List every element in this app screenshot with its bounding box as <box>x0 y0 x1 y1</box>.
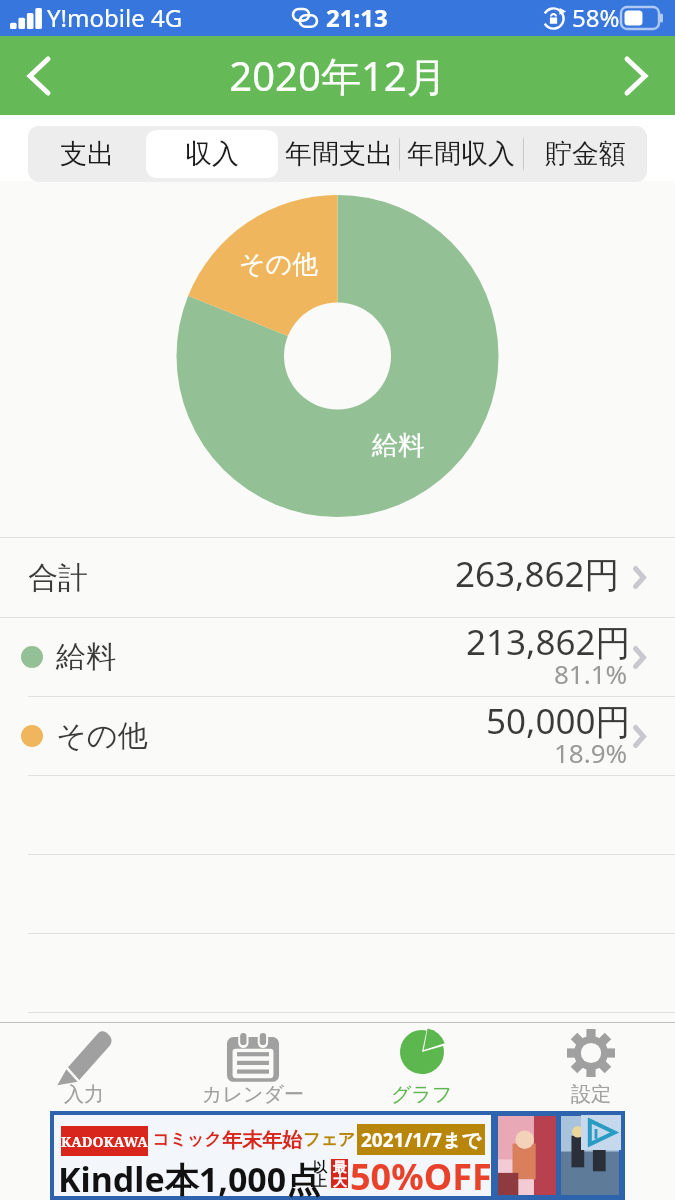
staticText: 最 大 <box>333 1159 347 1188</box>
staticText: 給料 <box>56 638 116 676</box>
staticText: カレンダー <box>202 1082 304 1107</box>
staticText: 収入 <box>185 137 239 171</box>
button[interactable]: 年間収入 <box>399 130 523 178</box>
staticText: 50%OFF <box>350 1152 492 1200</box>
staticText: 入力 <box>64 1082 104 1107</box>
button[interactable]: 収入 <box>146 130 278 178</box>
staticText: コミック <box>152 1129 222 1150</box>
staticText: Kindle本1,000点 <box>58 1156 321 1200</box>
staticText: その他 <box>239 248 319 281</box>
staticText: その他 <box>56 717 148 755</box>
staticText: 支出 <box>60 137 114 171</box>
staticText: 給料 <box>372 429 424 462</box>
staticText: 18.9% <box>554 735 628 770</box>
staticText: 81.1% <box>554 656 628 691</box>
staticText: 以 上 <box>313 1159 327 1191</box>
staticText: 263,862円 <box>455 550 620 598</box>
staticText: 21:13 <box>326 1 388 34</box>
staticText: 2021/1/7まで <box>361 1127 481 1153</box>
staticText: 合計 <box>28 559 88 597</box>
staticText: 50,000円 <box>486 697 631 745</box>
staticText: 年間収入 <box>407 137 515 171</box>
staticText: フェア <box>303 1129 356 1150</box>
button[interactable]: 入力 <box>0 1022 168 1108</box>
button[interactable]: 貯金額 <box>523 130 647 178</box>
staticText: Y!mobile <box>47 1 145 34</box>
staticText: 58% <box>572 1 620 34</box>
staticText: 年間支出 <box>285 137 393 171</box>
button[interactable]: グラフ <box>337 1022 506 1108</box>
button[interactable]: カレンダー <box>168 1022 337 1108</box>
staticText: 貯金額 <box>545 137 626 171</box>
button[interactable]: 給料 <box>0 618 675 696</box>
button[interactable]: 年間支出 <box>278 130 399 178</box>
button[interactable]: Next month <box>597 36 675 115</box>
staticText: 4G <box>151 1 183 34</box>
button[interactable]: Previous month <box>0 36 78 115</box>
button[interactable]: KADOKAWA <box>50 1111 625 1200</box>
staticText: 2020年12月 <box>229 48 447 103</box>
button[interactable]: 設定 <box>506 1022 675 1108</box>
button[interactable]: その他 <box>0 697 675 775</box>
button[interactable]: 支出 <box>28 130 146 178</box>
staticText: 213,862円 <box>466 618 631 666</box>
staticText: 年末年始 <box>222 1128 302 1153</box>
staticText: 設定 <box>571 1082 611 1107</box>
button[interactable]: 合計 <box>0 538 675 617</box>
staticText: KADOKAWA <box>61 1132 148 1151</box>
staticText: グラフ <box>391 1082 453 1107</box>
